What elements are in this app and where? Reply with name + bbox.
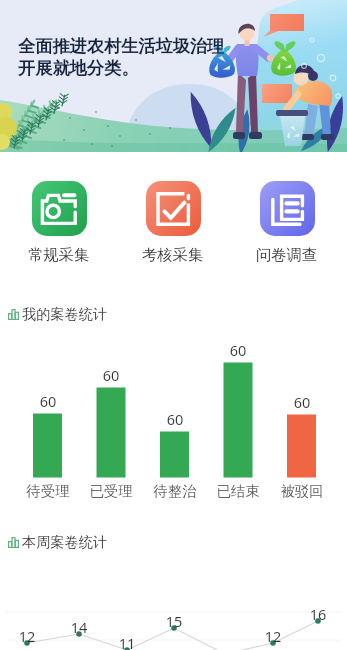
staticText: 本周案卷统计 [22,533,108,551]
other: 考核采集 [154,189,194,229]
staticText: 问卷调查 [256,245,318,264]
button[interactable]: 问卷调查 [230,181,344,264]
staticText: 60 [95,365,127,385]
staticText: 15 [160,611,188,631]
staticText: 11 [113,633,141,650]
other: 常规采集 [40,189,80,229]
staticText: 60 [32,391,64,411]
staticText: 60 [286,392,318,412]
staticText: 开展就地分类。 [18,57,139,79]
other: 问卷调查 [268,189,308,229]
staticText: 待受理 [26,482,70,500]
staticText: 待整治 [153,482,197,500]
staticText: 60 [159,409,191,429]
staticText: 已结束 [216,482,260,500]
staticText: 常规采集 [28,245,90,264]
button[interactable]: 全面推进农村生活垃圾治理 [0,0,347,152]
staticText: 考核采集 [142,245,204,264]
staticText: 60 [222,340,254,360]
staticText: 14 [65,617,93,637]
staticText: 我的案卷统计 [22,305,108,323]
button[interactable]: 常规采集 [2,181,116,264]
staticText: 12 [13,626,41,646]
button[interactable]: 考核采集 [116,181,230,264]
staticText: 16 [304,604,332,624]
staticText: 已受理 [89,482,133,500]
staticText: 被驳回 [280,482,324,500]
staticText: 12 [259,626,287,646]
staticText: 全面推进农村生活垃圾治理 [18,35,225,57]
